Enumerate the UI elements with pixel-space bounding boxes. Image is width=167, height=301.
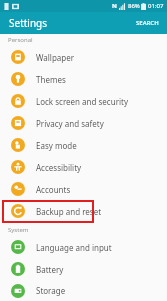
staticText: Personal: [8, 36, 33, 44]
button[interactable]: Backup and reset: [0, 200, 167, 222]
staticText: Storage: [36, 285, 66, 296]
staticText: 01:07: [148, 2, 164, 10]
button[interactable]: Language and input: [0, 236, 167, 258]
button[interactable]: Storage: [0, 280, 167, 301]
button[interactable]: Battery: [0, 258, 167, 280]
staticText: Settings: [9, 16, 48, 30]
staticText: Language and input: [36, 242, 112, 253]
staticText: 86%: [128, 2, 140, 10]
button[interactable]: SEARCH: [128, 15, 167, 31]
button[interactable]: Themes: [0, 68, 167, 90]
staticText: Themes: [36, 74, 66, 85]
button[interactable]: Accessibility: [0, 156, 167, 178]
staticText: N: [112, 2, 117, 10]
staticText: Battery: [36, 264, 64, 275]
staticText: Wallpaper: [36, 52, 75, 63]
button[interactable]: Privacy and safety: [0, 112, 167, 134]
staticText: Lock screen and security: [36, 96, 128, 107]
staticText: Backup and reset: [36, 206, 102, 217]
staticText: Accessibility: [36, 162, 82, 173]
button[interactable]: Easy mode: [0, 134, 167, 156]
staticText: Accounts: [36, 184, 71, 195]
button[interactable]: Lock screen and security: [0, 90, 167, 112]
staticText: Easy mode: [36, 140, 77, 151]
button[interactable]: Wallpaper: [0, 46, 167, 68]
button[interactable]: Accounts: [0, 178, 167, 200]
staticText: SEARCH: [136, 19, 159, 27]
staticText: System: [8, 226, 29, 234]
staticText: Privacy and safety: [36, 118, 104, 129]
